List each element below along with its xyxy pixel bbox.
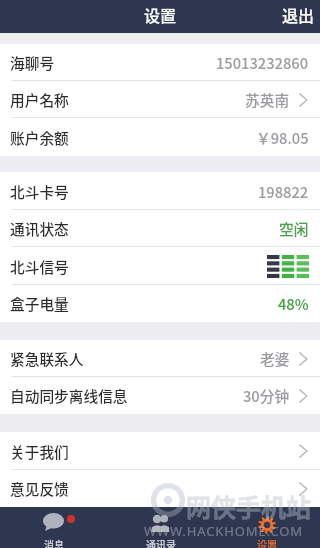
staticText: 空闲 xyxy=(279,218,309,239)
button[interactable]: 意见反馈 xyxy=(0,470,320,507)
button[interactable]: 通讯状态 xyxy=(0,210,320,247)
staticText: 48% xyxy=(278,293,309,314)
staticText: ￥98.05 xyxy=(256,127,309,148)
button[interactable]: 用户名称 xyxy=(0,81,320,118)
button[interactable]: Contacts xyxy=(107,507,214,548)
staticText: WWW.HACKHOME.COM xyxy=(144,522,303,540)
staticText: 北斗信号 xyxy=(10,256,69,277)
button[interactable]: 退出 xyxy=(277,0,320,33)
staticText: 消息 xyxy=(44,537,64,548)
staticText: 北斗卡号 xyxy=(10,181,69,202)
staticText: 老婆 xyxy=(260,348,290,369)
staticText: 关于我们 xyxy=(10,441,69,462)
button[interactable]: Messages xyxy=(0,507,107,548)
staticText: 苏英南 xyxy=(245,89,290,110)
staticText: 网侠手机站 xyxy=(186,488,312,524)
button[interactable]: 北斗信号 xyxy=(0,247,320,285)
staticText: 198822 xyxy=(258,181,309,202)
staticText: 30分钟 xyxy=(243,385,290,406)
staticText: 盒子电量 xyxy=(10,293,69,314)
button[interactable]: 盒子电量 xyxy=(0,285,320,322)
staticText: 设置 xyxy=(257,537,277,548)
staticText: 设置 xyxy=(144,3,177,26)
button[interactable]: Settings xyxy=(214,507,320,548)
staticText: 退出 xyxy=(282,3,315,26)
staticText: 紧急联系人 xyxy=(10,348,84,369)
staticText: 账户余额 xyxy=(10,127,69,148)
staticText: 通讯状态 xyxy=(10,218,69,239)
staticText: 通讯录 xyxy=(146,537,176,548)
staticText: 用户名称 xyxy=(10,89,69,110)
staticText: 海聊号 xyxy=(10,52,55,73)
button[interactable]: 北斗卡号 xyxy=(0,172,320,210)
button[interactable]: 紧急联系人 xyxy=(0,340,320,377)
button[interactable]: 自动同步离线信息 xyxy=(0,377,320,414)
staticText: 自动同步离线信息 xyxy=(10,385,128,406)
button[interactable]: 关于我们 xyxy=(0,432,320,470)
staticText: 15013232860 xyxy=(216,52,309,73)
button[interactable]: 账户余额 xyxy=(0,118,320,156)
button[interactable]: 海聊号 xyxy=(0,44,320,81)
staticText: 意见反馈 xyxy=(10,478,69,499)
